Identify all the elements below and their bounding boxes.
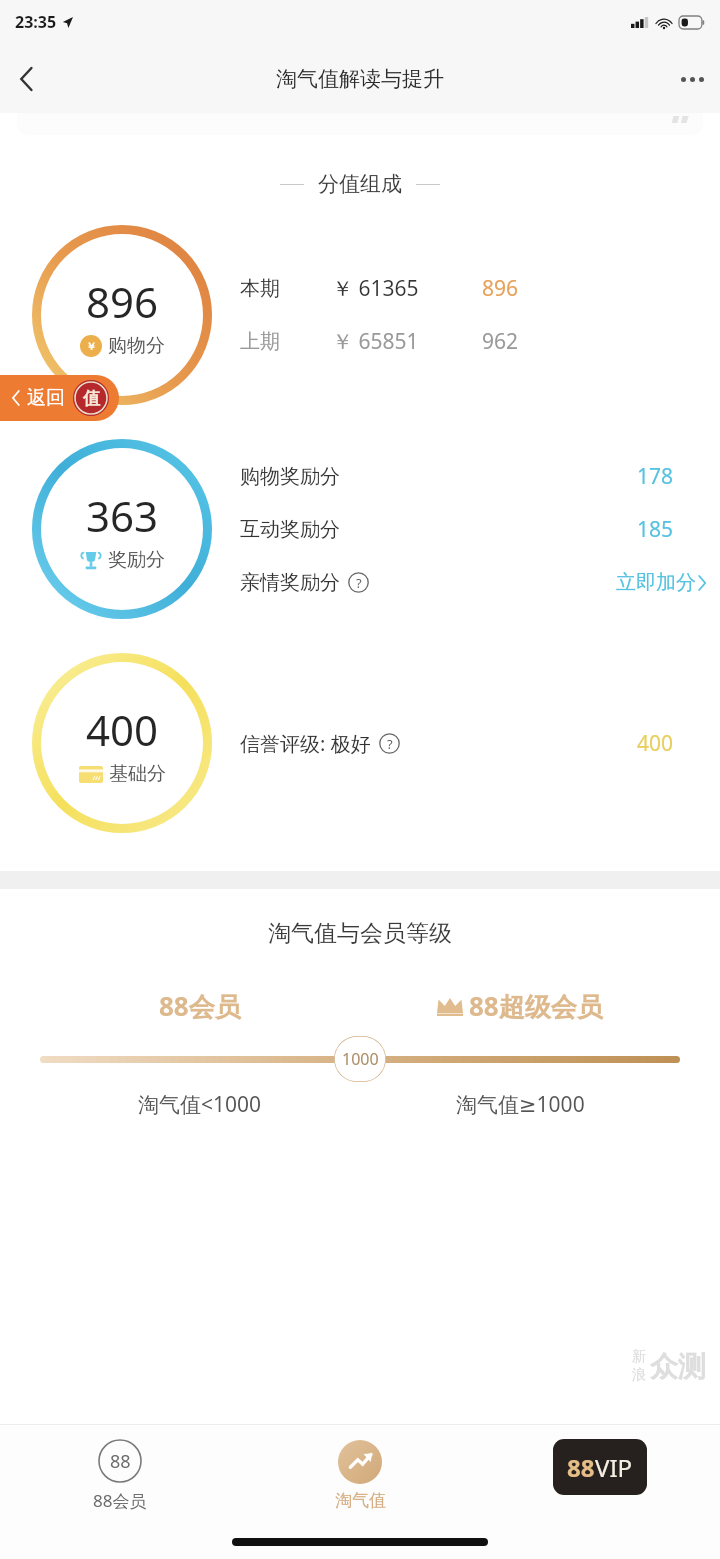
- button[interactable]: More options: [664, 51, 720, 107]
- staticText: ￥: [86, 340, 96, 353]
- staticText: 1000: [342, 1048, 379, 1070]
- staticText: ”: [671, 113, 689, 123]
- staticText: 新: [632, 1348, 646, 1366]
- staticText: 23:35: [15, 11, 57, 33]
- staticText: 分值组成: [318, 171, 402, 197]
- staticText: 88: [567, 1451, 595, 1484]
- button[interactable]: 88: [0, 1425, 240, 1525]
- button[interactable]: 88VIP: [480, 1425, 720, 1525]
- staticText: 88会员: [93, 1489, 147, 1512]
- staticText: 400: [86, 701, 159, 758]
- staticText: 88: [110, 1449, 131, 1474]
- staticText: 962: [482, 327, 519, 356]
- button[interactable]: Back: [0, 53, 52, 105]
- button[interactable]: 返回: [0, 375, 119, 421]
- staticText: 淘气值与会员等级: [0, 919, 720, 948]
- staticText: ￥ 61365: [332, 274, 482, 303]
- button[interactable]: 立即加分: [616, 568, 706, 597]
- staticText: 896: [86, 273, 159, 330]
- staticText: VIP: [595, 1451, 633, 1484]
- staticText: 基础分: [109, 762, 166, 786]
- staticText: 信誉评级: 极好: [240, 730, 371, 757]
- staticText: 淘气值解读与提升: [276, 66, 444, 92]
- staticText: 178: [637, 462, 674, 491]
- staticText: 众测: [650, 1349, 706, 1384]
- staticText: 购物分: [108, 334, 165, 358]
- staticText: 淘气值≥1000: [456, 1090, 585, 1119]
- staticText: 互动奖励分: [240, 517, 340, 542]
- staticText: ?: [387, 735, 393, 753]
- staticText: 购物奖励分: [240, 464, 340, 489]
- button[interactable]: 896: [0, 225, 720, 405]
- staticText: 本期: [240, 276, 332, 301]
- staticText: 上期: [240, 329, 332, 354]
- button[interactable]: 400: [0, 653, 720, 833]
- button[interactable]: 363: [0, 439, 720, 619]
- staticText: 88会员: [159, 988, 241, 1024]
- staticText: ?: [356, 574, 362, 592]
- staticText: 88超级会员: [469, 988, 603, 1024]
- staticText: 亲情奖励分: [240, 570, 340, 595]
- staticText: 363: [86, 487, 159, 544]
- staticText: 淘气值: [335, 1490, 386, 1511]
- staticText: 值: [83, 388, 100, 409]
- staticText: 185: [637, 515, 674, 544]
- staticText: 返回: [27, 386, 65, 410]
- staticText: 立即加分: [616, 570, 696, 595]
- button[interactable]: 淘气值: [240, 1425, 480, 1525]
- staticText: 淘气值<1000: [138, 1090, 262, 1119]
- staticText: 400: [637, 729, 674, 758]
- staticText: 浪: [632, 1366, 646, 1384]
- staticText: 奖励分: [108, 548, 165, 572]
- staticText: ￥ 65851: [332, 327, 482, 356]
- staticText: 896: [482, 274, 519, 303]
